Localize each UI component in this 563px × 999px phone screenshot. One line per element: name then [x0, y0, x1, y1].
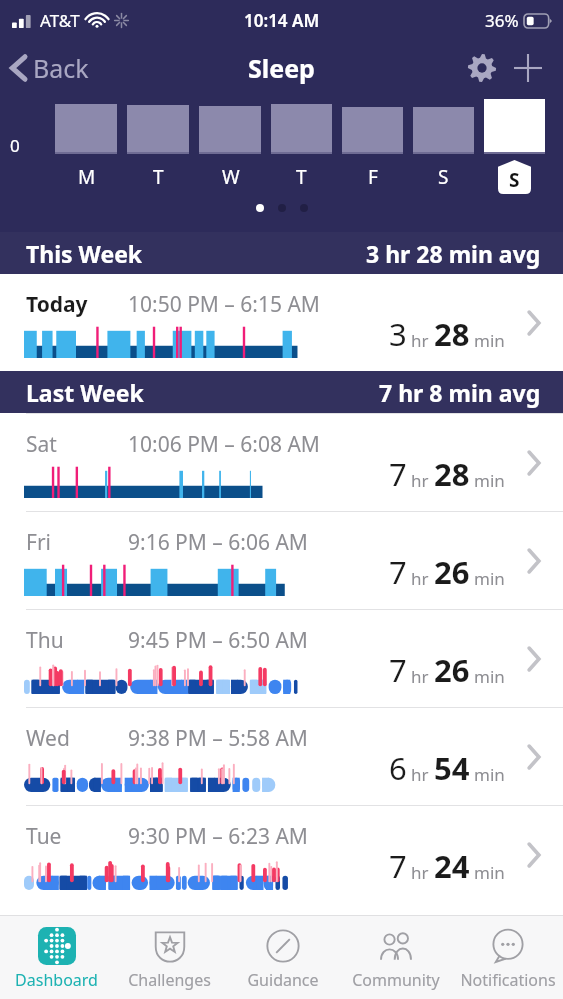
staticText: 0 — [10, 134, 20, 157]
staticText: 7 — [389, 551, 407, 593]
button[interactable]: Settings — [459, 45, 505, 91]
button[interactable]: Dashboard — [0, 916, 113, 999]
staticText: 7 hr 8 min avg — [379, 377, 541, 408]
staticText: Tue — [26, 822, 62, 851]
staticText: S — [438, 164, 449, 190]
button[interactable]: Add sleep log — [505, 45, 551, 91]
staticText: min — [474, 567, 505, 590]
button[interactable]: T — [271, 96, 332, 194]
staticText: Last Week — [26, 377, 144, 408]
staticText: hr — [411, 665, 429, 688]
staticText: 9:30 PM – 6:23 AM — [128, 822, 308, 851]
staticText: 10:14 AM — [244, 9, 320, 32]
button[interactable]: F — [342, 96, 403, 194]
staticText: S — [509, 167, 520, 193]
staticText: 28 — [434, 453, 470, 495]
staticText: min — [474, 329, 505, 352]
button[interactable]: Notifications — [452, 916, 563, 999]
staticText: 9:16 PM – 6:06 AM — [128, 528, 308, 557]
staticText: Back — [33, 51, 89, 85]
button[interactable]: This Week — [0, 232, 563, 274]
staticText: 7 — [389, 649, 407, 691]
button[interactable]: S — [484, 96, 545, 194]
button[interactable]: Today — [0, 274, 563, 371]
staticText: 7 — [389, 845, 407, 887]
staticText: This Week — [26, 238, 143, 269]
staticText: Guidance — [247, 969, 319, 991]
button[interactable]: Challenges — [113, 916, 226, 999]
staticText: Wed — [26, 724, 70, 753]
staticText: Community — [352, 969, 440, 991]
button[interactable]: W — [199, 96, 261, 194]
button[interactable]: T — [127, 96, 189, 194]
staticText: Sat — [26, 430, 57, 459]
staticText: min — [474, 861, 505, 884]
button[interactable]: Fri — [0, 511, 563, 609]
staticText: 9:38 PM – 5:58 AM — [128, 724, 308, 753]
staticText: min — [474, 763, 505, 786]
button[interactable]: Wed — [0, 707, 563, 805]
staticText: Challenges — [128, 969, 211, 991]
button[interactable]: Thu — [0, 609, 563, 707]
staticText: T — [296, 164, 307, 190]
staticText: Notifications — [460, 969, 556, 991]
staticText: min — [474, 469, 505, 492]
staticText: hr — [411, 329, 429, 352]
staticText: W — [222, 164, 240, 190]
staticText: 3 — [389, 313, 407, 355]
button[interactable]: Last Week — [0, 371, 563, 413]
staticText: Fri — [26, 528, 51, 557]
button[interactable]: Sat — [0, 413, 563, 511]
staticText: Today — [26, 290, 88, 319]
staticText: T — [153, 164, 164, 190]
staticText: min — [474, 665, 505, 688]
staticText: 6 — [389, 747, 407, 789]
staticText: 7 — [389, 453, 407, 495]
staticText: 3 hr 28 min avg — [366, 238, 541, 269]
staticText: 26 — [434, 649, 470, 691]
staticText: F — [368, 164, 378, 190]
button[interactable]: M — [55, 96, 117, 194]
staticText: 36% — [485, 9, 519, 32]
staticText: hr — [411, 861, 429, 884]
button[interactable]: Community — [339, 916, 452, 999]
staticText: AT&T — [40, 9, 80, 32]
staticText: Sleep — [248, 51, 315, 85]
staticText: Thu — [26, 626, 64, 655]
button[interactable]: Tue — [0, 805, 563, 903]
button[interactable]: Back — [0, 45, 101, 91]
staticText: hr — [411, 469, 429, 492]
staticText: 26 — [434, 551, 470, 593]
staticText: 54 — [434, 747, 470, 789]
staticText: 24 — [434, 845, 470, 887]
staticText: hr — [411, 763, 429, 786]
button[interactable]: Guidance — [226, 916, 339, 999]
staticText: 10:50 PM – 6:15 AM — [128, 290, 320, 319]
staticText: 28 — [434, 313, 470, 355]
staticText: hr — [411, 567, 429, 590]
staticText: 9:45 PM – 6:50 AM — [128, 626, 308, 655]
staticText: 10:06 PM – 6:08 AM — [128, 430, 320, 459]
button[interactable]: S — [413, 96, 474, 194]
staticText: Dashboard — [15, 969, 98, 991]
staticText: M — [78, 164, 96, 190]
